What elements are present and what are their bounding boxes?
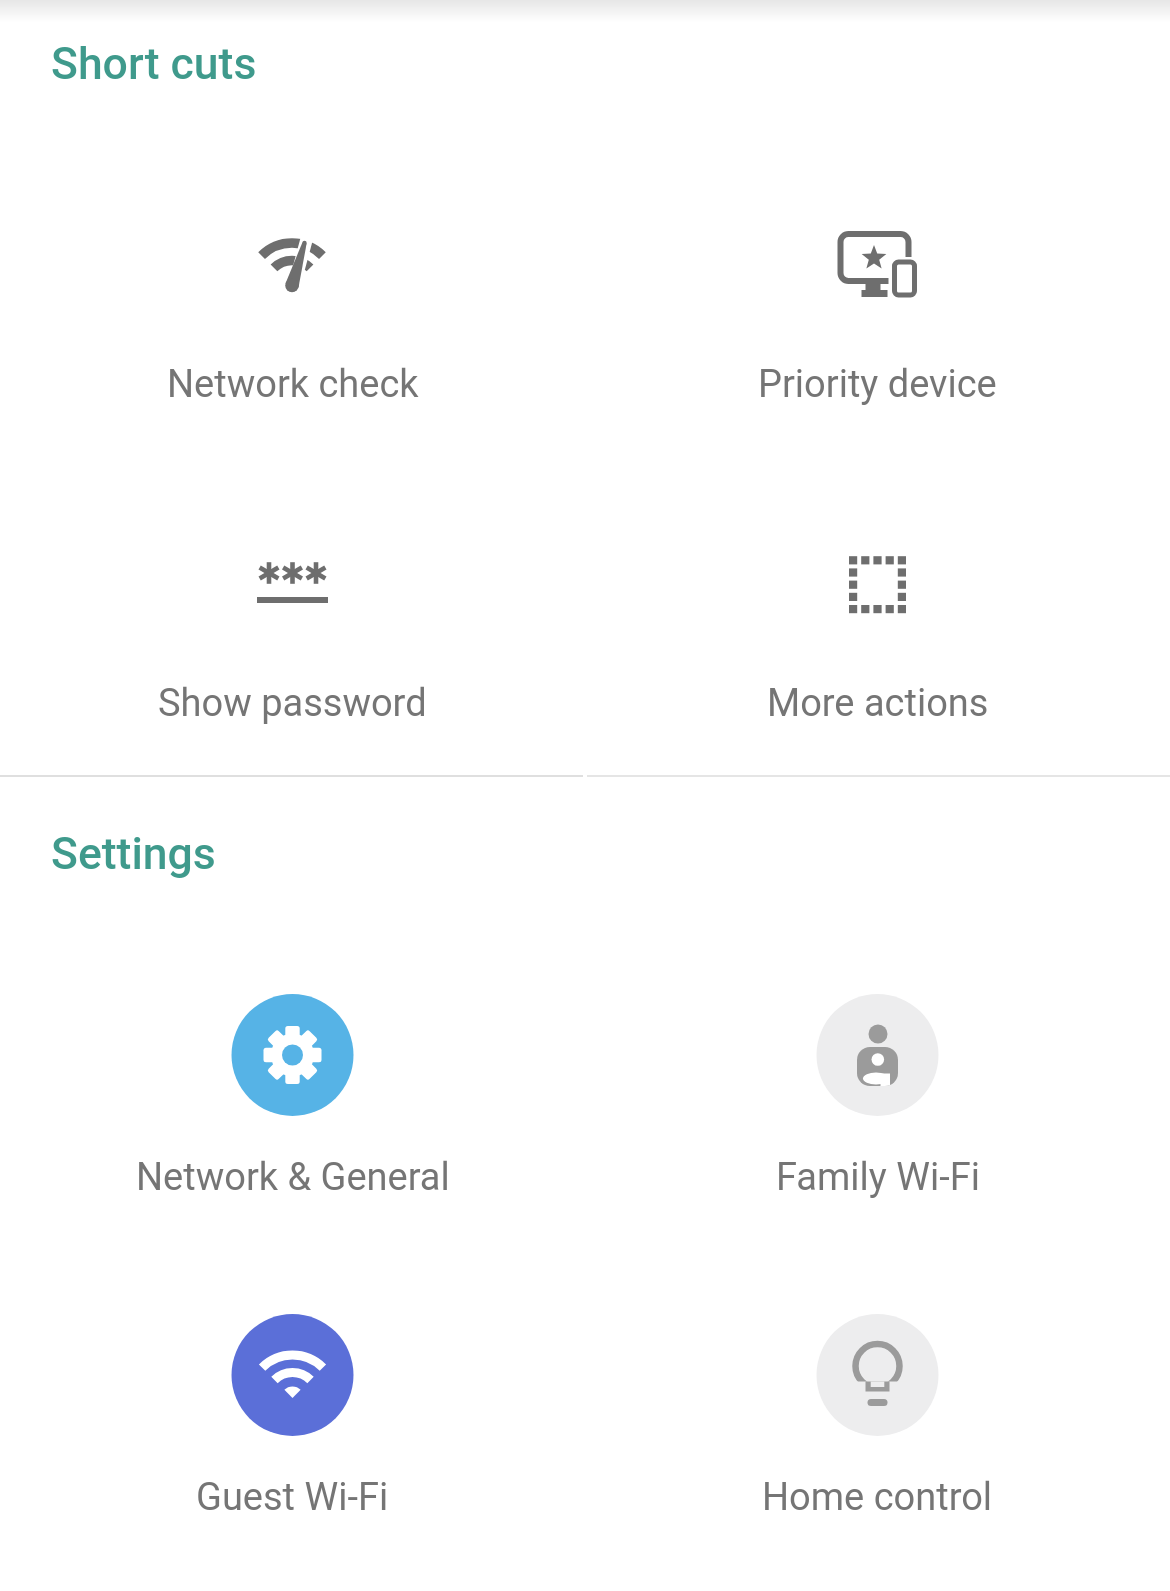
staticText: Show password bbox=[158, 681, 427, 726]
staticText: Family Wi-Fi bbox=[776, 1155, 980, 1200]
button[interactable]: Network check bbox=[0, 106, 585, 426]
staticText: Network & General bbox=[136, 1155, 450, 1200]
staticText: Guest Wi-Fi bbox=[196, 1475, 389, 1520]
staticText: Home control bbox=[762, 1475, 993, 1520]
staticText: Priority device bbox=[758, 362, 997, 407]
button[interactable]: Network & General bbox=[0, 915, 585, 1235]
button[interactable]: Guest Wi-Fi bbox=[0, 1235, 585, 1555]
button[interactable]: More actions bbox=[585, 436, 1170, 756]
button[interactable]: Home control bbox=[585, 1235, 1170, 1555]
staticText: Network check bbox=[167, 362, 419, 407]
button[interactable]: Show password bbox=[0, 436, 585, 756]
staticText: Short cuts bbox=[51, 38, 257, 90]
button[interactable]: Priority device bbox=[585, 106, 1170, 426]
staticText: Settings bbox=[51, 828, 216, 880]
staticText: More actions bbox=[767, 681, 989, 726]
button[interactable]: Family Wi-Fi bbox=[585, 915, 1170, 1235]
